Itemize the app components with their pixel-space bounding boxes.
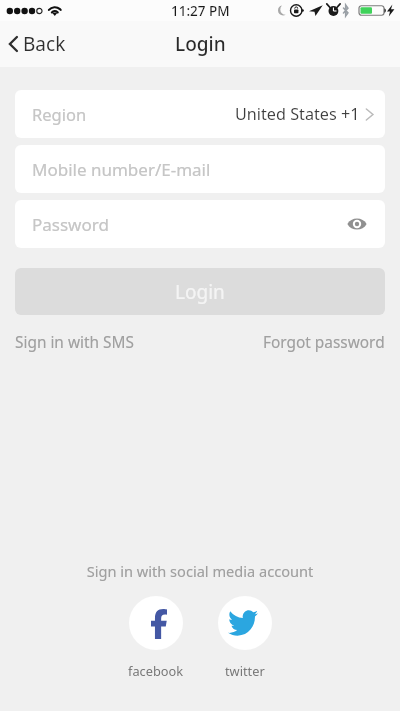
- staticText: United States +1: [235, 103, 360, 125]
- staticText: Login: [175, 31, 226, 57]
- button[interactable]: Back: [9, 31, 66, 57]
- button[interactable]: Sign in with SMS: [15, 332, 134, 353]
- button[interactable]: facebook: [129, 596, 183, 650]
- staticText: Sign in with social media account: [0, 561, 400, 581]
- staticText: Mobile number/E-mail: [32, 158, 211, 181]
- button[interactable]: Password: [15, 200, 385, 248]
- staticText: Region: [32, 103, 87, 125]
- staticText: Sign in with SMS: [15, 332, 134, 353]
- staticText: twitter: [225, 662, 265, 679]
- button[interactable]: Region: [15, 90, 385, 138]
- staticText: 11:27 PM: [171, 2, 230, 20]
- button[interactable]: Forgot password: [263, 332, 385, 353]
- button[interactable]: Show password: [344, 211, 370, 237]
- staticText: Back: [23, 31, 66, 57]
- button[interactable]: Mobile number/E-mail: [15, 145, 385, 193]
- staticText: Forgot password: [263, 332, 385, 353]
- staticText: Password: [32, 213, 109, 236]
- staticText: Login: [175, 279, 225, 305]
- staticText: facebook: [128, 662, 184, 679]
- button[interactable]: twitter: [218, 596, 272, 650]
